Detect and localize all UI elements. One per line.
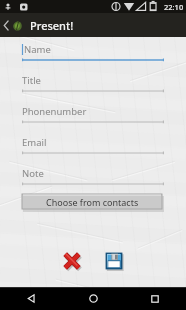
button[interactable]: Cancel <box>60 249 84 273</box>
button[interactable]: Navigate up <box>0 16 26 35</box>
staticText: Note <box>22 167 44 180</box>
button[interactable]: Choose from contacts <box>22 194 164 211</box>
staticText: Phonenumber <box>22 105 87 118</box>
button[interactable]: Title <box>22 74 164 93</box>
staticText: Title <box>22 74 41 87</box>
button[interactable]: Recents <box>124 287 186 310</box>
staticText: Email <box>22 136 47 149</box>
staticText: 22:10 <box>164 2 184 12</box>
button[interactable]: Phonenumber <box>22 105 164 124</box>
button[interactable]: Email <box>22 136 164 155</box>
button[interactable]: Note <box>22 167 164 186</box>
button[interactable]: Back <box>0 287 62 310</box>
staticText: Choose from contacts <box>46 196 139 208</box>
button[interactable]: Name <box>22 43 164 62</box>
button[interactable]: Save <box>102 249 126 273</box>
staticText: Name <box>24 43 51 56</box>
staticText: Present! <box>30 18 74 33</box>
button[interactable]: Home <box>62 287 124 310</box>
